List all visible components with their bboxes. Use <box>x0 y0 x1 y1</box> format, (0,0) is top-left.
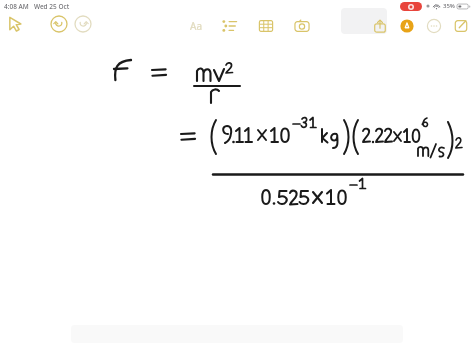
button[interactable]: Camera <box>291 15 313 37</box>
button[interactable]: New note <box>450 15 472 37</box>
staticText: 35% <box>443 2 455 10</box>
button[interactable]: Redo <box>73 14 93 34</box>
button[interactable]: More options <box>423 15 445 37</box>
staticText: Aa <box>190 19 202 33</box>
button[interactable]: Share <box>369 15 391 37</box>
button[interactable]: Lists <box>219 15 241 37</box>
button[interactable]: Select <box>5 13 27 35</box>
staticText: 4:08 AM Wed 25 Oct <box>4 2 70 11</box>
button[interactable]: Aa <box>185 15 207 37</box>
button[interactable]: Highlighter <box>396 15 418 37</box>
button[interactable]: Table <box>255 15 277 37</box>
button[interactable]: Undo <box>49 14 69 34</box>
button[interactable] <box>0 0 474 355</box>
